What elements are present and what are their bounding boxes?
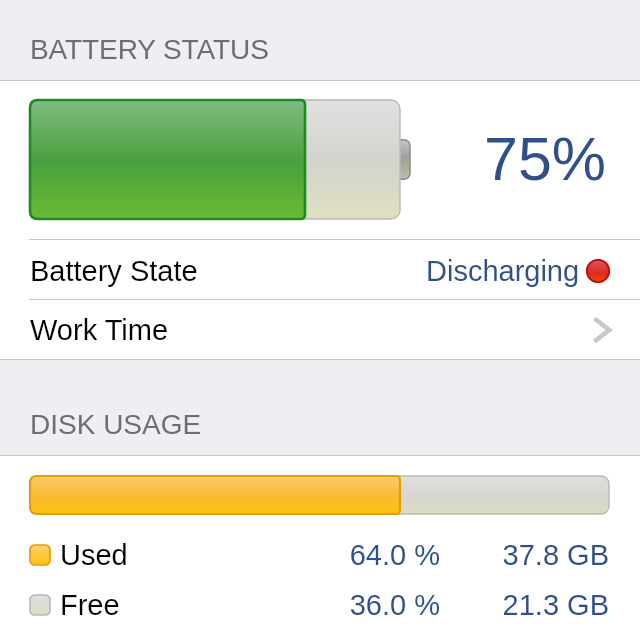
staticText: 64.0 % xyxy=(328,539,440,571)
staticText: Used xyxy=(60,539,128,571)
button[interactable]: Battery State xyxy=(0,240,640,299)
button[interactable]: Used xyxy=(0,532,640,578)
other: Battery 75 percent xyxy=(30,100,412,220)
staticText: 21.3 GB xyxy=(478,589,609,621)
staticText: Free xyxy=(60,589,120,621)
staticText: 37.8 GB xyxy=(478,539,609,571)
staticText: DISK USAGE xyxy=(30,409,202,440)
staticText: Discharging xyxy=(426,255,580,287)
button[interactable]: Free xyxy=(0,582,640,628)
staticText: 75% xyxy=(484,125,607,193)
staticText: Work Time xyxy=(30,314,169,346)
staticText: Battery State xyxy=(30,255,198,287)
staticText: BATTERY STATUS xyxy=(30,34,269,65)
other: Battery discharging indicator xyxy=(586,259,610,283)
button[interactable]: Work Time xyxy=(0,300,640,359)
staticText: 36.0 % xyxy=(328,589,440,621)
other: Open Work Time xyxy=(592,315,614,345)
